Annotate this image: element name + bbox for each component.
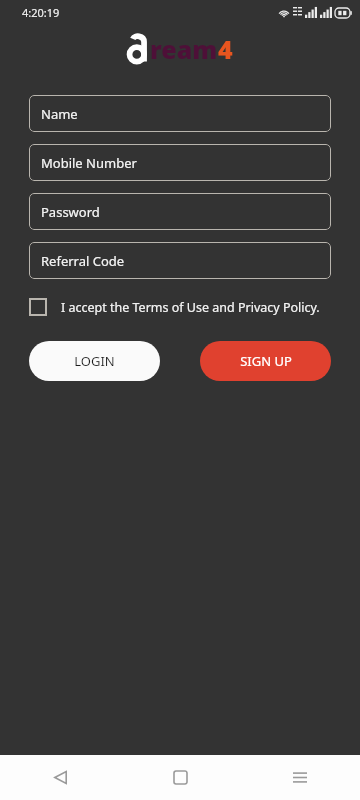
button[interactable]: Back — [0, 755, 120, 800]
staticText: Referral Code — [41, 252, 125, 270]
staticText: I accept the Terms of Use and Privacy Po… — [61, 299, 320, 316]
button[interactable]: Mobile Number — [29, 144, 331, 181]
button[interactable]: I accept the Terms of Use and Privacy Po… — [29, 292, 331, 322]
button[interactable]: Password — [29, 193, 331, 230]
staticText: ream — [150, 32, 218, 66]
button[interactable]: Name — [29, 95, 331, 132]
button[interactable]: Referral Code — [29, 242, 331, 279]
button[interactable]: SIGN UP — [200, 341, 331, 381]
button[interactable]: Recent apps — [240, 755, 360, 800]
button[interactable]: LOGIN — [29, 341, 160, 381]
staticText: LOGIN — [74, 352, 115, 370]
staticText: 4:20:19 — [22, 5, 60, 20]
staticText: SIGN UP — [240, 352, 292, 370]
staticText: Password — [41, 203, 100, 221]
staticText: Mobile Number — [41, 154, 137, 172]
staticText: Name — [41, 105, 78, 123]
staticText: 4 — [218, 32, 233, 66]
button[interactable]: Home — [120, 755, 240, 800]
